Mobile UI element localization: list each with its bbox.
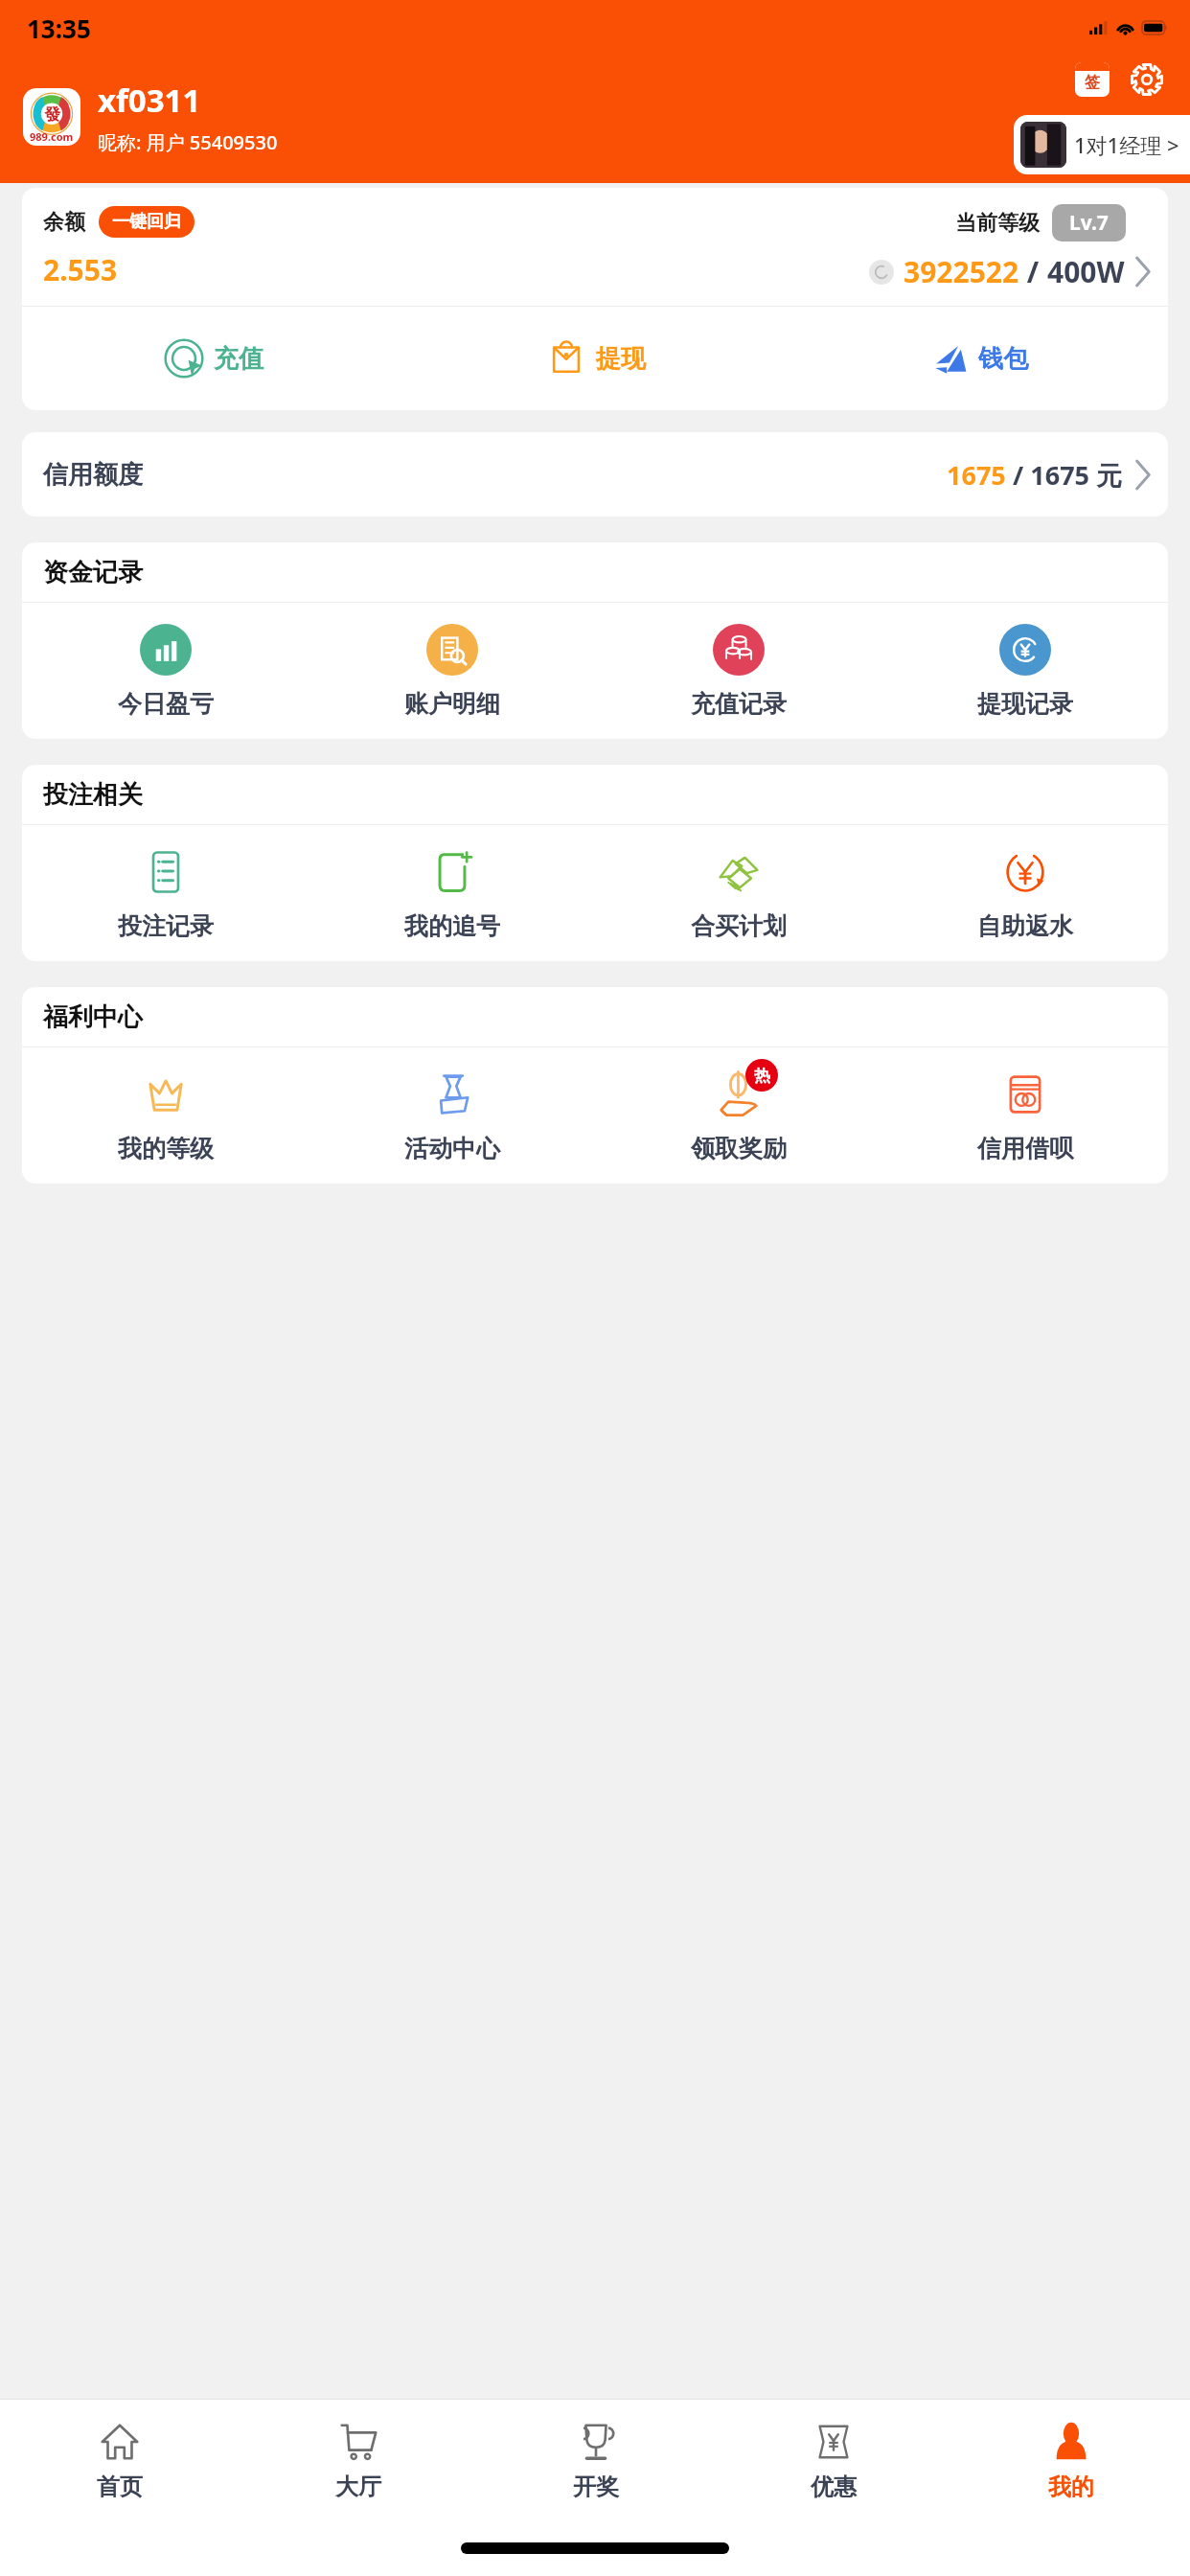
button[interactable]: 大厅 [239,2400,477,2520]
staticText: 钱包 [978,343,1028,375]
staticText: 首页 [97,2472,143,2501]
staticText: 大厅 [335,2472,381,2501]
button[interactable]: 优惠 [715,2400,952,2520]
staticText: 资金记录 [43,557,143,588]
staticText: 989.com [30,129,74,144]
staticText: 福利中心 [43,1001,143,1033]
staticText: / 1675 元 [1006,457,1123,493]
staticText: 今日盈亏 [118,689,214,719]
button[interactable]: 签到 [1075,62,1110,97]
staticText: 昵称: 用户 55409530 [98,129,278,155]
button[interactable]: 我的等级 [22,1047,309,1184]
staticText: 1675 [947,457,1006,493]
staticText: 热 [754,1066,770,1086]
staticText: 活动中心 [404,1134,500,1163]
button[interactable]: 设置 [1129,61,1165,98]
button[interactable]: 信用借呗 [881,1047,1168,1184]
staticText: 2.553 [43,250,118,289]
staticText: 投注记录 [118,911,214,941]
staticText: 签 [1085,73,1100,92]
staticText: 账户明细 [404,689,500,719]
staticText: 合买计划 [691,911,787,941]
button[interactable]: 投注记录 [22,825,309,961]
staticText: 我的追号 [404,911,500,941]
staticText: 信用额度 [43,459,143,491]
staticText: 13:35 [27,11,91,45]
staticText: 發 [44,104,60,125]
button[interactable]: 活动中心 [309,1047,595,1184]
button[interactable]: 提现 [403,307,786,410]
button[interactable]: 一键回归 [112,211,181,233]
button[interactable]: 热 [595,1047,881,1184]
staticText: 当前等级 [955,210,1040,237]
staticText: 提现 [596,343,646,375]
button[interactable]: 开奖 [477,2400,715,2520]
button[interactable]: 提现记录 [881,603,1168,739]
staticText: 开奖 [573,2472,619,2501]
button[interactable]: 充值记录 [595,603,881,739]
staticText: 优惠 [811,2472,857,2501]
staticText: 信用借呗 [977,1134,1073,1163]
button[interactable]: 账户明细 [309,603,595,739]
button[interactable]: 余额 [43,204,1151,291]
staticText: 余额 [43,209,85,236]
staticText: 我的 [1048,2472,1094,2501]
button[interactable]: 首页 [0,2400,239,2520]
staticText: 我的等级 [118,1134,214,1163]
button[interactable]: 合买计划 [595,825,881,961]
staticText: 投注相关 [43,779,143,811]
staticText: 自助返水 [977,911,1073,941]
staticText: 400W [1047,252,1125,291]
staticText: xf0311 [98,79,201,122]
staticText: 充值 [214,343,263,375]
button[interactable]: 自助返水 [881,825,1168,961]
staticText: 一键回归 [112,211,181,233]
button[interactable]: 1对1经理 > [1020,122,1183,168]
button[interactable]: 充值 [22,307,403,410]
staticText: 1对1经理 > [1074,130,1179,159]
staticText: 领取奖励 [691,1134,787,1163]
button[interactable]: 我的追号 [309,825,595,961]
button[interactable]: 今日盈亏 [22,603,309,739]
staticText: 提现记录 [977,689,1073,719]
button[interactable]: 信用额度 [22,432,1168,517]
button[interactable]: 我的 [952,2400,1190,2520]
staticText: 充值记录 [691,689,787,719]
staticText: / [1019,252,1047,291]
staticText: Lv.7 [1069,209,1109,237]
button[interactable]: 钱包 [786,307,1168,410]
staticText: 3922522 [904,252,1019,291]
